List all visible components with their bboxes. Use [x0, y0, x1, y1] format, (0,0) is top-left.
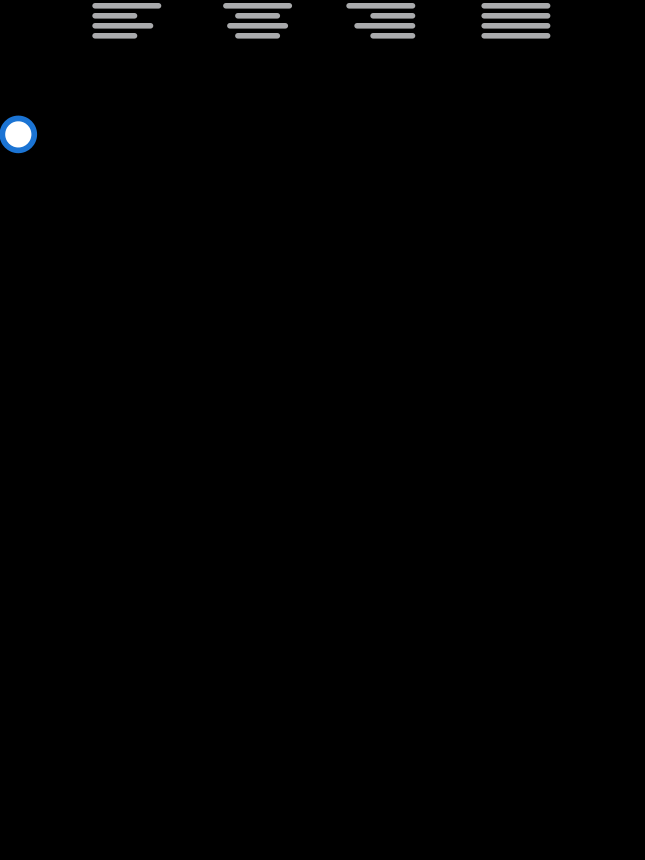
- button[interactable]: Align center: [223, 3, 292, 39]
- button[interactable]: Align right: [346, 3, 415, 39]
- button[interactable]: Align left: [92, 3, 161, 39]
- button[interactable]: Selected: [0, 116, 37, 153]
- button[interactable]: Justify: [481, 3, 550, 39]
